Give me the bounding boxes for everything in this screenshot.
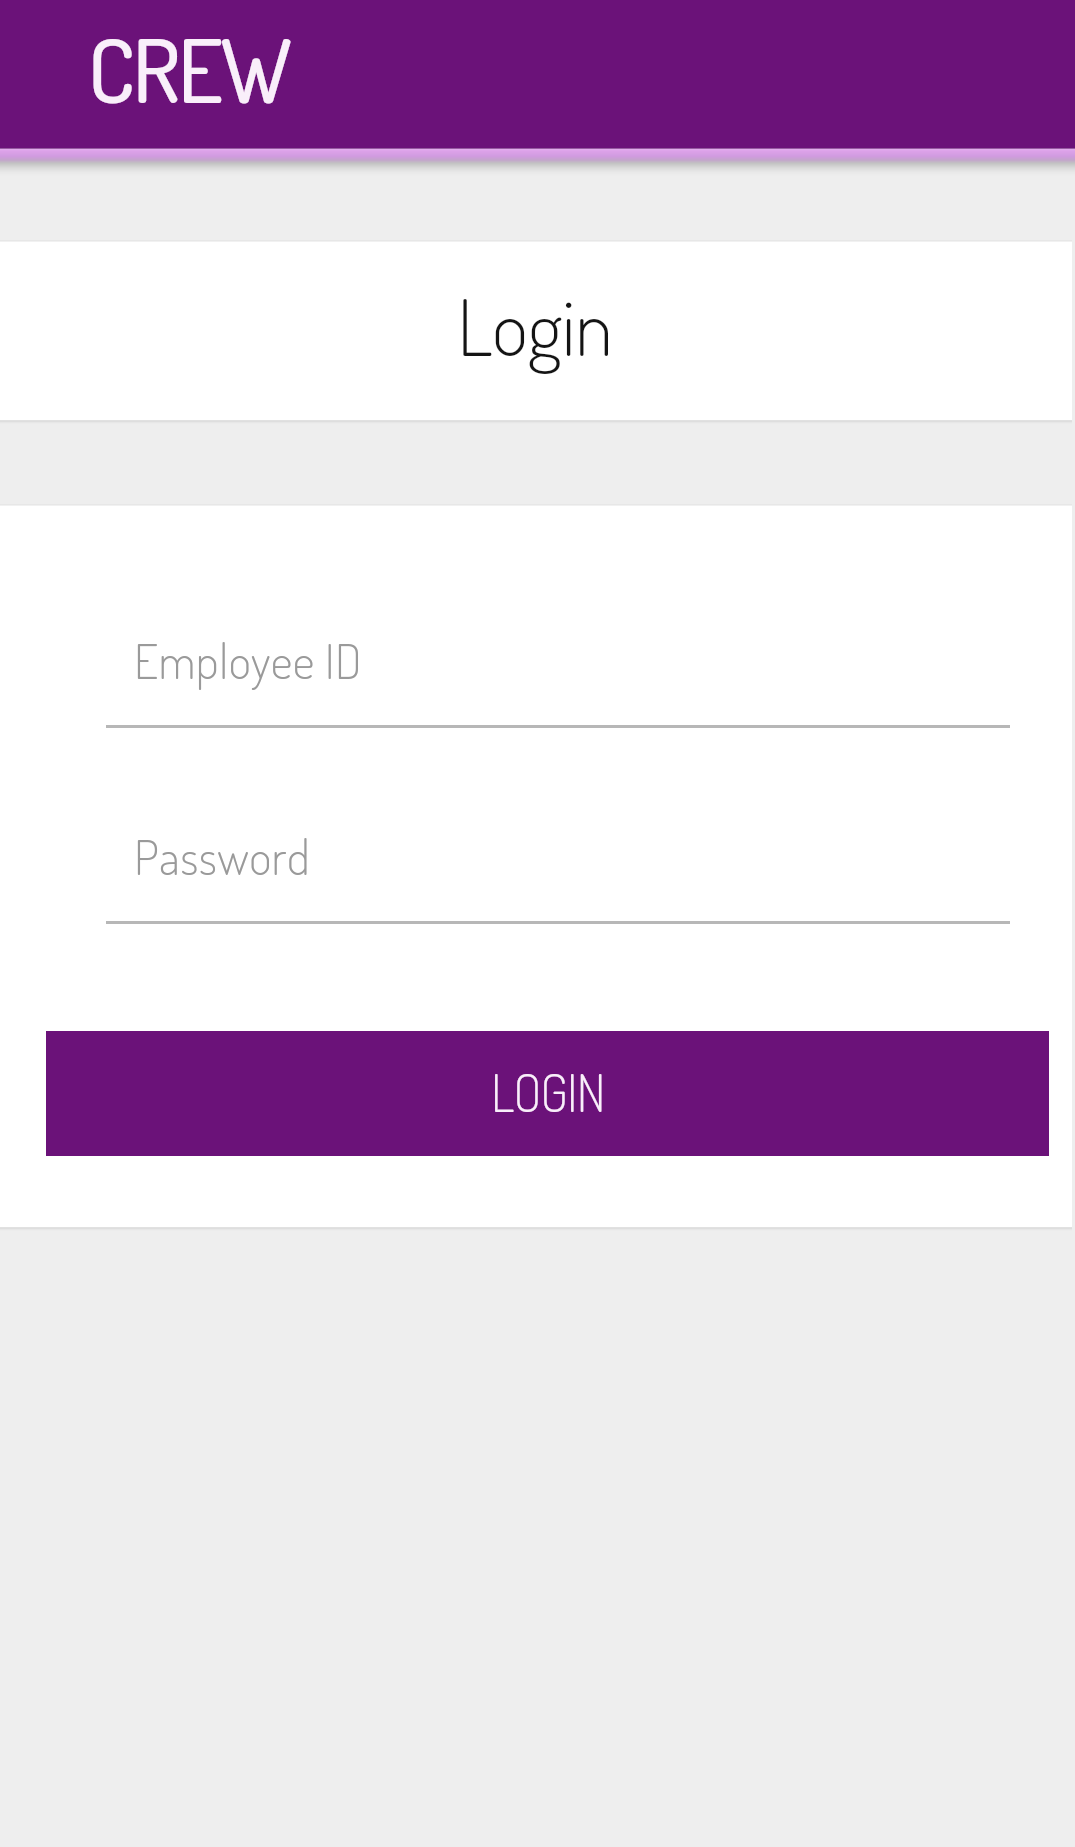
staticText: Login (457, 276, 613, 375)
staticText: Employee ID (134, 630, 363, 691)
staticText: Password (134, 826, 311, 887)
button[interactable]: Employee ID (106, 630, 1010, 728)
staticText: CREW (88, 13, 290, 124)
button[interactable]: LOGIN (46, 1031, 1049, 1156)
staticText: LOGIN (491, 1060, 605, 1124)
button[interactable]: CREW home (0, 0, 1075, 148)
button[interactable]: Password (106, 826, 1010, 924)
